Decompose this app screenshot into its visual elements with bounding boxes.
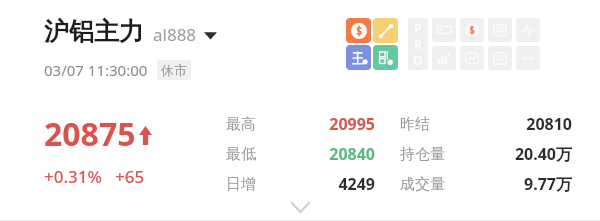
staticText: 4249 (256, 173, 375, 195)
staticText: 20810 (430, 113, 572, 135)
staticText: P (414, 20, 422, 36)
staticText: R (414, 36, 422, 52)
staticText: al888 (153, 23, 197, 46)
button[interactable]: 持仓量 (400, 143, 572, 165)
button[interactable]: 最高 (226, 113, 375, 135)
staticText: 20.40万 (445, 143, 572, 165)
button[interactable]: Expand (277, 197, 323, 217)
button[interactable]: Tool (373, 18, 398, 43)
staticText: 20840 (256, 143, 375, 165)
button[interactable]: 沪铝主力 (44, 16, 217, 47)
button[interactable]: Bars (432, 46, 456, 70)
button[interactable]: Calendar chart (488, 18, 512, 42)
button[interactable]: Card (432, 18, 456, 42)
staticText: 成交量 (400, 175, 445, 194)
staticText: 9.77万 (445, 173, 572, 195)
button[interactable]: Report (488, 46, 512, 70)
button[interactable]: 最低 (226, 143, 375, 165)
button[interactable]: Trend (460, 46, 484, 70)
button[interactable]: Tool (373, 45, 398, 70)
staticText: 沪铝主力 (44, 16, 144, 47)
button[interactable]: Money (460, 18, 484, 42)
staticText: 20875 (44, 112, 136, 156)
staticText: 日增 (226, 175, 256, 194)
staticText: 20995 (256, 113, 375, 135)
staticText: 03/07 11:30:00 (44, 60, 148, 80)
button[interactable]: Pulse (516, 18, 540, 42)
button[interactable]: 日增 (226, 173, 375, 195)
other: Select contract (204, 31, 217, 40)
staticText: O (413, 52, 423, 68)
button[interactable]: Tool (346, 45, 371, 70)
staticText: 最低 (226, 145, 256, 164)
staticText: 昨结 (400, 115, 430, 134)
staticText: +65 (115, 165, 145, 188)
button[interactable]: 成交量 (400, 173, 572, 195)
staticText: +0.31% (44, 165, 103, 188)
button[interactable]: 昨结 (400, 113, 572, 135)
staticText: 休市 (161, 62, 187, 78)
staticText: 最高 (226, 115, 256, 134)
staticText: 持仓量 (400, 145, 445, 164)
button[interactable]: Tool (346, 18, 371, 43)
button[interactable]: PRO (408, 18, 428, 70)
